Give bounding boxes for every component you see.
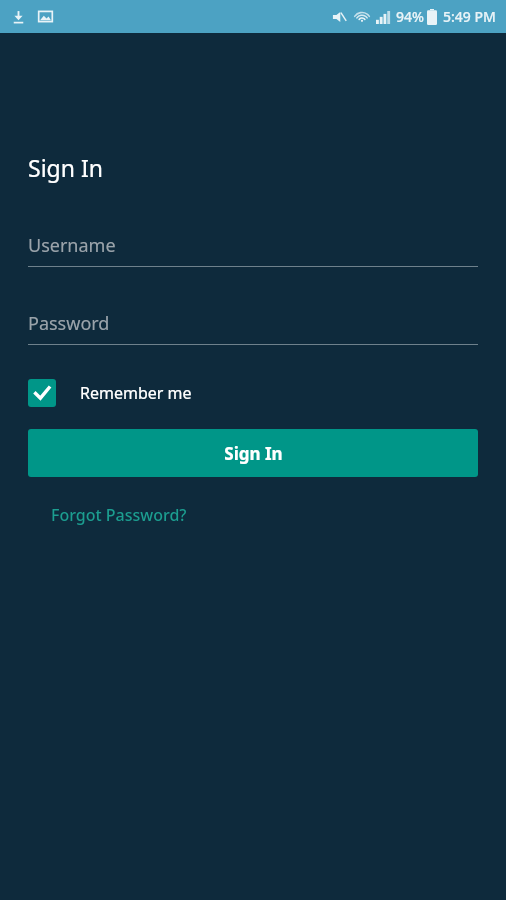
staticText: Remember me [80, 382, 192, 404]
staticText: Sign In [28, 152, 103, 183]
button[interactable]: Password [28, 311, 478, 345]
staticText: 5:49 PM [443, 7, 496, 26]
staticText: Sign In [224, 442, 283, 465]
staticText: Password [28, 311, 110, 336]
button[interactable]: Remember me [28, 375, 192, 411]
staticText: 94% [396, 7, 424, 26]
staticText: Username [28, 233, 116, 258]
button[interactable]: Sign In [28, 429, 478, 477]
staticText: Forgot Password? [51, 504, 187, 526]
button[interactable]: Forgot Password? [28, 496, 195, 534]
button[interactable]: Username [28, 233, 478, 267]
